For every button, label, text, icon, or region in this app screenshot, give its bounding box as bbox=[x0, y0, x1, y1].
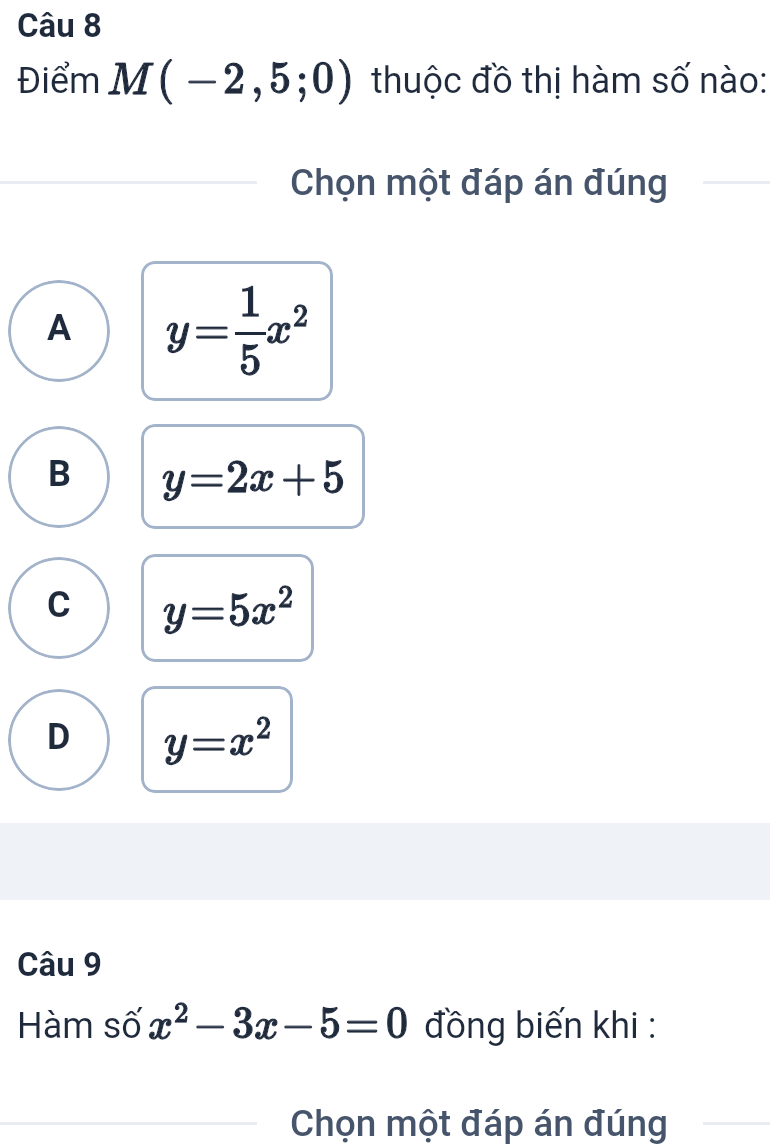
staticText: 2 bbox=[174, 996, 189, 1030]
staticText: = bbox=[190, 583, 226, 637]
staticText: 5 bbox=[322, 450, 345, 504]
staticText: 5 bbox=[228, 583, 251, 637]
staticText: + bbox=[281, 450, 317, 504]
staticText: 3 bbox=[232, 998, 254, 1050]
staticText: − bbox=[193, 998, 228, 1050]
staticText: thuộc đồ thị hàm số nào: bbox=[371, 60, 768, 102]
staticText: x bbox=[249, 458, 276, 501]
staticText: 2 bbox=[223, 53, 245, 105]
button[interactable]: Đáp án A bbox=[141, 261, 333, 401]
staticText: 2 bbox=[226, 450, 249, 504]
staticText: 2 bbox=[174, 996, 189, 1030]
staticText: = bbox=[191, 714, 227, 768]
staticText: = bbox=[345, 998, 380, 1050]
staticText: đồng biến khi : bbox=[424, 1005, 657, 1047]
staticText: x bbox=[266, 310, 293, 353]
staticText: 2 bbox=[278, 580, 293, 615]
staticText: 5 bbox=[228, 583, 251, 637]
staticText: x bbox=[251, 591, 278, 634]
staticText: = bbox=[194, 302, 230, 356]
staticText: ; bbox=[296, 53, 309, 105]
staticText: Hàm số bbox=[17, 1005, 142, 1047]
staticText: x bbox=[266, 310, 293, 353]
staticText: A bbox=[47, 307, 72, 349]
staticText: 5 bbox=[322, 450, 345, 504]
staticText: Câu 9 bbox=[17, 945, 102, 984]
staticText: y bbox=[166, 310, 189, 353]
button[interactable]: Chọn A bbox=[8, 280, 110, 382]
staticText: Câu 8 bbox=[17, 6, 102, 45]
staticText: − bbox=[185, 53, 220, 105]
staticText: Điểm bbox=[17, 60, 101, 102]
staticText: 2 bbox=[293, 299, 308, 334]
staticText: ( bbox=[157, 53, 175, 105]
staticText: x bbox=[254, 1007, 280, 1048]
staticText: 5 bbox=[269, 53, 291, 105]
staticText: = bbox=[189, 450, 225, 504]
staticText: 2 bbox=[223, 53, 245, 105]
staticText: y bbox=[162, 458, 185, 501]
staticText: y bbox=[163, 591, 186, 634]
staticText: D bbox=[47, 716, 71, 758]
staticText: 5 bbox=[319, 998, 341, 1050]
staticText: Chọn một đáp án đúng bbox=[290, 1102, 668, 1145]
staticText: , bbox=[251, 53, 264, 105]
staticText: 5 bbox=[319, 998, 341, 1050]
staticText: 2 bbox=[226, 450, 249, 504]
staticText: x bbox=[249, 458, 276, 501]
button[interactable]: Đáp án C bbox=[141, 554, 314, 662]
staticText: 1 bbox=[239, 275, 262, 328]
staticText: 0 bbox=[386, 998, 408, 1050]
staticText: y bbox=[164, 722, 187, 765]
staticText: x bbox=[254, 1007, 280, 1048]
staticText: 3 bbox=[232, 998, 254, 1050]
staticText: 5 bbox=[269, 53, 291, 105]
staticText: x bbox=[229, 722, 256, 765]
staticText: − bbox=[281, 998, 316, 1050]
button[interactable]: Đáp án D bbox=[141, 686, 293, 793]
staticText: x bbox=[148, 1007, 174, 1048]
staticText: y bbox=[162, 458, 185, 501]
staticText: y bbox=[164, 722, 187, 765]
staticText: = bbox=[190, 583, 226, 637]
staticText: + bbox=[281, 450, 317, 504]
button[interactable]: Chọn C bbox=[8, 557, 110, 659]
staticText: M bbox=[107, 62, 150, 103]
staticText: 2 bbox=[278, 580, 293, 615]
staticText: 2 bbox=[256, 711, 271, 746]
staticText: = bbox=[194, 302, 230, 356]
staticText: = bbox=[189, 450, 225, 504]
staticText: − bbox=[281, 998, 316, 1050]
staticText: x bbox=[148, 1007, 174, 1048]
staticText: 0 bbox=[312, 53, 334, 105]
staticText: 2 bbox=[293, 299, 308, 334]
staticText: y bbox=[166, 310, 189, 353]
staticText: M bbox=[107, 62, 150, 103]
button[interactable]: Đáp án B bbox=[141, 424, 365, 529]
staticText: Chọn một đáp án đúng bbox=[290, 161, 668, 204]
staticText: y bbox=[163, 591, 186, 634]
staticText: 5 bbox=[239, 334, 262, 387]
staticText: 1 bbox=[239, 275, 262, 328]
button[interactable]: Chọn B bbox=[8, 426, 110, 528]
staticText: − bbox=[185, 53, 220, 105]
staticText: = bbox=[191, 714, 227, 768]
staticText: − bbox=[193, 998, 228, 1050]
button[interactable]: Chọn D bbox=[8, 689, 110, 791]
staticText: ) bbox=[337, 53, 355, 105]
staticText: ; bbox=[296, 53, 309, 105]
staticText: C bbox=[47, 584, 71, 626]
staticText: B bbox=[48, 453, 71, 495]
staticText: ( bbox=[157, 53, 175, 105]
staticText: ) bbox=[337, 53, 355, 105]
staticText: , bbox=[251, 53, 264, 105]
staticText: x bbox=[229, 722, 256, 765]
staticText: 0 bbox=[386, 998, 408, 1050]
staticText: 2 bbox=[256, 711, 271, 746]
staticText: = bbox=[345, 998, 380, 1050]
staticText: 0 bbox=[312, 53, 334, 105]
staticText: x bbox=[251, 591, 278, 634]
staticText: 5 bbox=[239, 334, 262, 387]
